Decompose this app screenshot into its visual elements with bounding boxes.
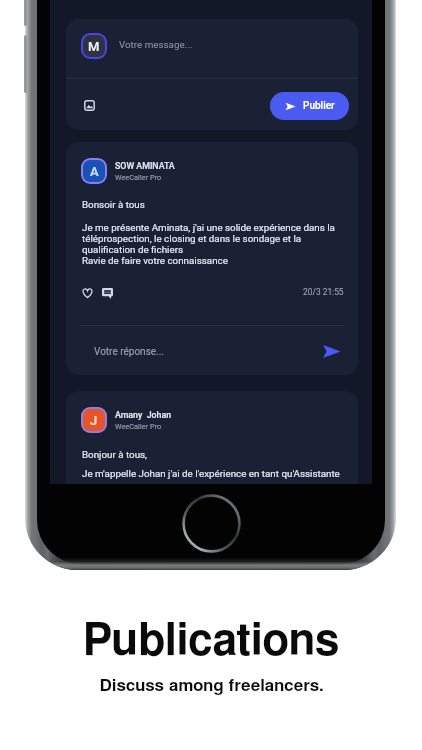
staticText: J xyxy=(90,413,98,428)
staticText: Votre message... xyxy=(119,39,193,50)
button[interactable]: Profile M xyxy=(81,33,107,59)
button[interactable]: Profile A xyxy=(81,158,107,184)
staticText: A xyxy=(90,164,99,179)
staticText: Bonjour à tous, xyxy=(82,449,148,460)
staticText: Publications xyxy=(82,619,340,663)
staticText: Bonsoir à tous xyxy=(82,199,145,210)
staticText: Discuss among freelancers. xyxy=(99,677,324,694)
button[interactable] xyxy=(66,326,358,375)
button[interactable] xyxy=(66,19,358,78)
staticText: M xyxy=(88,39,100,54)
button[interactable]: Send reply xyxy=(322,342,341,361)
button[interactable]: Publier xyxy=(270,92,349,120)
button[interactable]: Comment xyxy=(102,288,113,299)
button[interactable]: Profile J xyxy=(81,407,107,433)
staticText: Amany Johan xyxy=(115,410,172,420)
staticText: Je me présente Aminata, j'ai une solide … xyxy=(82,222,335,266)
staticText: Publier xyxy=(303,100,335,112)
staticText: SOW AMINATA xyxy=(115,161,175,171)
button[interactable]: Like xyxy=(82,288,93,298)
staticText: WeeCaller Pro xyxy=(115,422,162,431)
staticText: WeeCaller Pro xyxy=(115,173,162,182)
button[interactable]: Add image xyxy=(84,100,95,111)
staticText: 20/3 21:55 xyxy=(303,287,344,297)
staticText: Votre réponse... xyxy=(94,346,165,358)
staticText: Je m'appelle Johan j'ai de l'expérience … xyxy=(82,468,340,479)
